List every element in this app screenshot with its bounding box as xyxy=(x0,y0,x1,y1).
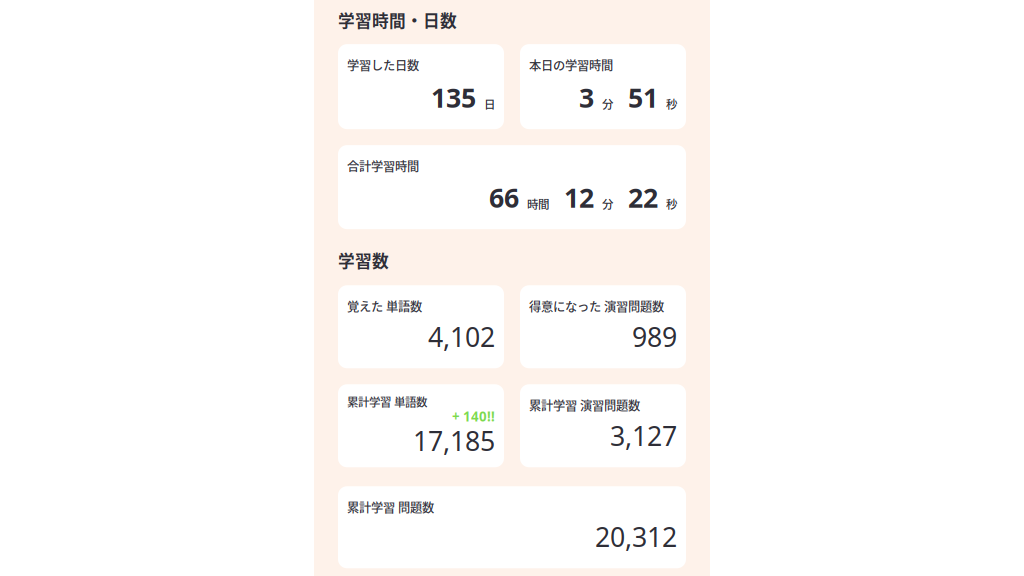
staticText: 累計学習 演習問題数 xyxy=(529,396,640,414)
staticText: 51 xyxy=(628,80,658,115)
staticText: 累計学習 単語数 xyxy=(347,393,427,410)
staticText: 分 xyxy=(602,95,613,112)
staticText: 合計学習時間 xyxy=(347,157,419,175)
button[interactable]: 累計学習 単語数 xyxy=(338,384,504,467)
staticText: 秒 xyxy=(666,195,677,212)
staticText: 学習時間・日数 xyxy=(338,8,457,32)
button[interactable]: 得意になった 演習問題数 xyxy=(520,285,686,368)
staticText: 20,312 xyxy=(595,519,677,554)
staticText: + 140!! xyxy=(452,407,495,425)
staticText: 989 xyxy=(632,319,677,354)
staticText: 4,102 xyxy=(428,319,495,354)
staticText: 秒 xyxy=(666,95,677,112)
staticText: 覚えた 単語数 xyxy=(347,297,422,315)
staticText: 3 xyxy=(579,80,594,115)
staticText: 学習した日数 xyxy=(347,56,419,74)
staticText: 17,185 xyxy=(413,423,495,458)
staticText: 135 xyxy=(431,80,476,115)
staticText: 本日の学習時間 xyxy=(529,56,613,74)
staticText: 得意になった 演習問題数 xyxy=(529,297,664,315)
staticText: 分 xyxy=(602,195,613,212)
button[interactable]: 累計学習 問題数 xyxy=(338,486,686,568)
button[interactable]: 本日の学習時間 xyxy=(520,44,686,129)
staticText: 日 xyxy=(484,95,495,112)
staticText: 66 xyxy=(489,180,519,215)
staticText: 22 xyxy=(628,180,658,215)
button[interactable]: 累計学習 演習問題数 xyxy=(520,384,686,467)
button[interactable]: 学習した日数 xyxy=(338,44,504,129)
button[interactable]: 覚えた 単語数 xyxy=(338,285,504,368)
staticText: 時間 xyxy=(527,195,549,212)
staticText: 累計学習 問題数 xyxy=(347,498,434,516)
button[interactable]: 合計学習時間 xyxy=(338,145,686,229)
staticText: 学習数 xyxy=(338,248,389,272)
staticText: 12 xyxy=(564,180,594,215)
staticText: 3,127 xyxy=(610,418,677,453)
